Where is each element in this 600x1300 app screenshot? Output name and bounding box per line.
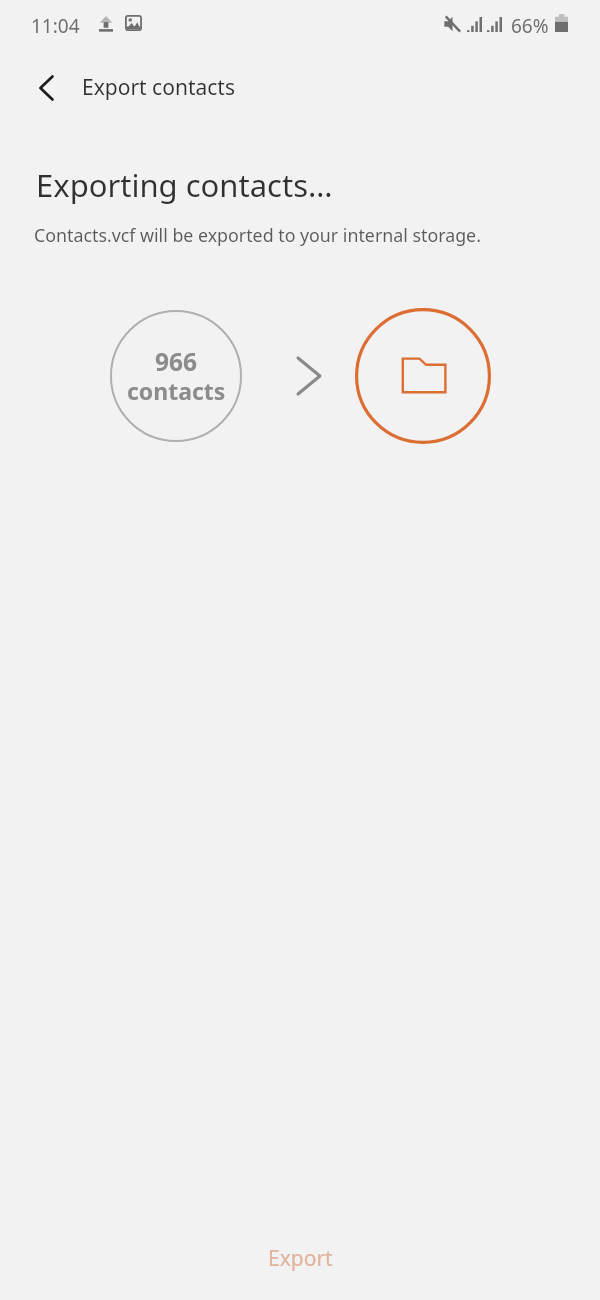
staticText: 66% (511, 13, 549, 39)
staticText: Exporting contacts… (36, 164, 333, 206)
button[interactable]: Export (0, 1222, 600, 1300)
staticText: 966 (155, 345, 198, 378)
staticText: Contacts.vcf will be exported to your in… (34, 223, 481, 247)
staticText: contacts (127, 375, 226, 406)
staticText: Export contacts (82, 73, 235, 102)
staticText: Export (268, 1244, 333, 1273)
button[interactable]: Back (24, 64, 72, 112)
staticText: 11:04 (31, 13, 80, 39)
